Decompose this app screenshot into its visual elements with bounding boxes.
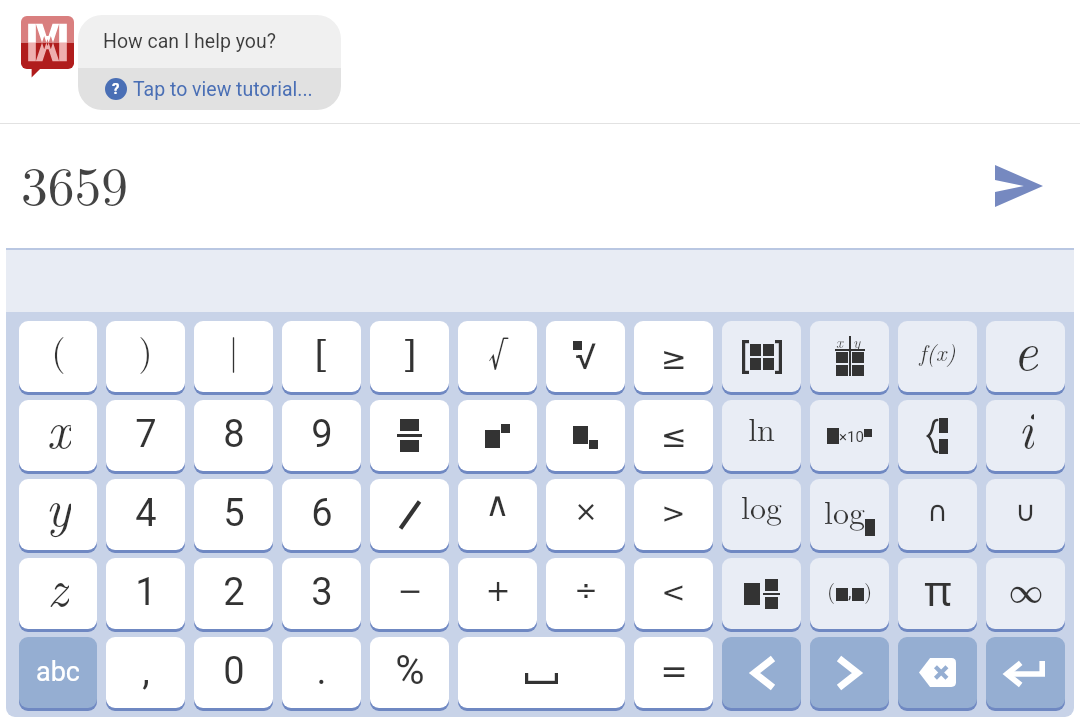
button[interactable]: ×: [546, 479, 625, 550]
button[interactable]: 0: [194, 637, 273, 708]
button[interactable]: 6: [282, 479, 361, 550]
button[interactable]: ∧: [458, 479, 537, 550]
staticText: ,: [848, 581, 852, 602]
button[interactable]: 8: [194, 400, 273, 471]
button[interactable]: abc: [19, 637, 97, 708]
staticText: x: [836, 331, 843, 352]
button[interactable]: i: [986, 400, 1065, 471]
button[interactable]: 5: [194, 479, 273, 550]
button[interactable]: z: [19, 558, 97, 629]
staticText: ?: [112, 80, 120, 98]
button[interactable]: How can I help you?: [78, 15, 341, 68]
button[interactable]: |: [194, 321, 273, 392]
staticText: 9: [311, 412, 333, 457]
staticText: √: [575, 336, 597, 378]
button[interactable]: piecewise: [898, 400, 977, 471]
button[interactable]: 1: [106, 558, 185, 629]
button[interactable]: 9: [282, 400, 361, 471]
button[interactable]: 4: [106, 479, 185, 550]
staticText: 3: [311, 570, 333, 615]
staticText: 3659: [21, 145, 128, 221]
button[interactable]: log: [722, 479, 801, 550]
button[interactable]: ∞: [986, 558, 1065, 629]
button[interactable]: log base: [810, 479, 889, 550]
button[interactable]: %: [370, 637, 449, 708]
button[interactable]: ,: [106, 637, 185, 708]
button[interactable]: 2: [194, 558, 273, 629]
button[interactable]: =: [634, 637, 713, 708]
button[interactable]: √: [458, 321, 537, 392]
staticText: 8: [223, 412, 245, 457]
button[interactable]: π: [898, 558, 977, 629]
staticText: ): [138, 323, 153, 375]
button[interactable]: [370, 479, 449, 550]
button[interactable]: y: [19, 479, 97, 550]
staticText: ): [864, 575, 873, 605]
staticText: .: [316, 649, 327, 694]
staticText: (: [51, 323, 66, 375]
staticText: √: [488, 322, 507, 377]
button[interactable]: 7: [106, 400, 185, 471]
staticText: Tap to view tutorial...: [133, 78, 313, 101]
staticText: >: [661, 496, 686, 530]
staticText: 6: [311, 491, 333, 536]
button[interactable]: −: [370, 558, 449, 629]
staticText: ×: [574, 495, 598, 528]
button[interactable]: power: [458, 400, 537, 471]
button[interactable]: .: [282, 637, 361, 708]
staticText: %: [395, 647, 425, 694]
button[interactable]: matrix: [722, 321, 801, 392]
button[interactable]: Send: [979, 146, 1059, 226]
staticText: log: [741, 483, 782, 528]
staticText: How can I help you?: [103, 30, 276, 53]
button[interactable]: 3: [282, 558, 361, 629]
button[interactable]: mixed number: [722, 558, 801, 629]
staticText: ×10: [839, 428, 864, 446]
staticText: ∪: [1015, 495, 1036, 528]
button[interactable]: ≥: [634, 321, 713, 392]
button[interactable]: <: [634, 558, 713, 629]
staticText: i: [1018, 400, 1034, 460]
staticText: z: [47, 558, 69, 618]
button[interactable]: enter: [986, 637, 1065, 708]
button[interactable]: point: [810, 558, 889, 629]
button[interactable]: x: [19, 400, 97, 471]
staticText: ÷: [574, 574, 598, 607]
button[interactable]: (: [19, 321, 97, 392]
button[interactable]: ≤: [634, 400, 713, 471]
button[interactable]: f(x): [898, 321, 977, 392]
button[interactable]: nth root: [546, 321, 625, 392]
button[interactable]: ∩: [898, 479, 977, 550]
button[interactable]: ]: [370, 321, 449, 392]
button[interactable]: [: [282, 321, 361, 392]
staticText: 4: [135, 491, 157, 536]
staticText: +: [485, 573, 511, 608]
button[interactable]: derivative: [810, 321, 889, 392]
button[interactable]: delete: [898, 637, 977, 708]
staticText: log: [824, 488, 865, 533]
staticText: −: [397, 573, 423, 608]
staticText: =: [660, 652, 688, 690]
staticText: f(x): [919, 335, 956, 368]
staticText: 2: [223, 570, 245, 615]
button[interactable]: ∪: [986, 479, 1065, 550]
button[interactable]: fraction: [370, 400, 449, 471]
button[interactable]: move right: [810, 637, 889, 708]
staticText: ∩: [927, 495, 948, 528]
button[interactable]: ): [106, 321, 185, 392]
button[interactable]: space: [458, 637, 625, 708]
staticText: ,: [142, 649, 150, 694]
button[interactable]: move left: [722, 637, 801, 708]
staticText: [: [314, 333, 329, 376]
button[interactable]: ?: [78, 68, 341, 110]
button[interactable]: e: [986, 321, 1065, 392]
staticText: 5: [223, 491, 245, 536]
button[interactable]: subscript: [546, 400, 625, 471]
button[interactable]: >: [634, 479, 713, 550]
staticText: ≤: [661, 418, 687, 454]
button[interactable]: ln: [722, 400, 801, 471]
button[interactable]: scientific notation: [810, 400, 889, 471]
button[interactable]: +: [458, 558, 537, 629]
staticText: (: [827, 575, 836, 605]
button[interactable]: ÷: [546, 558, 625, 629]
